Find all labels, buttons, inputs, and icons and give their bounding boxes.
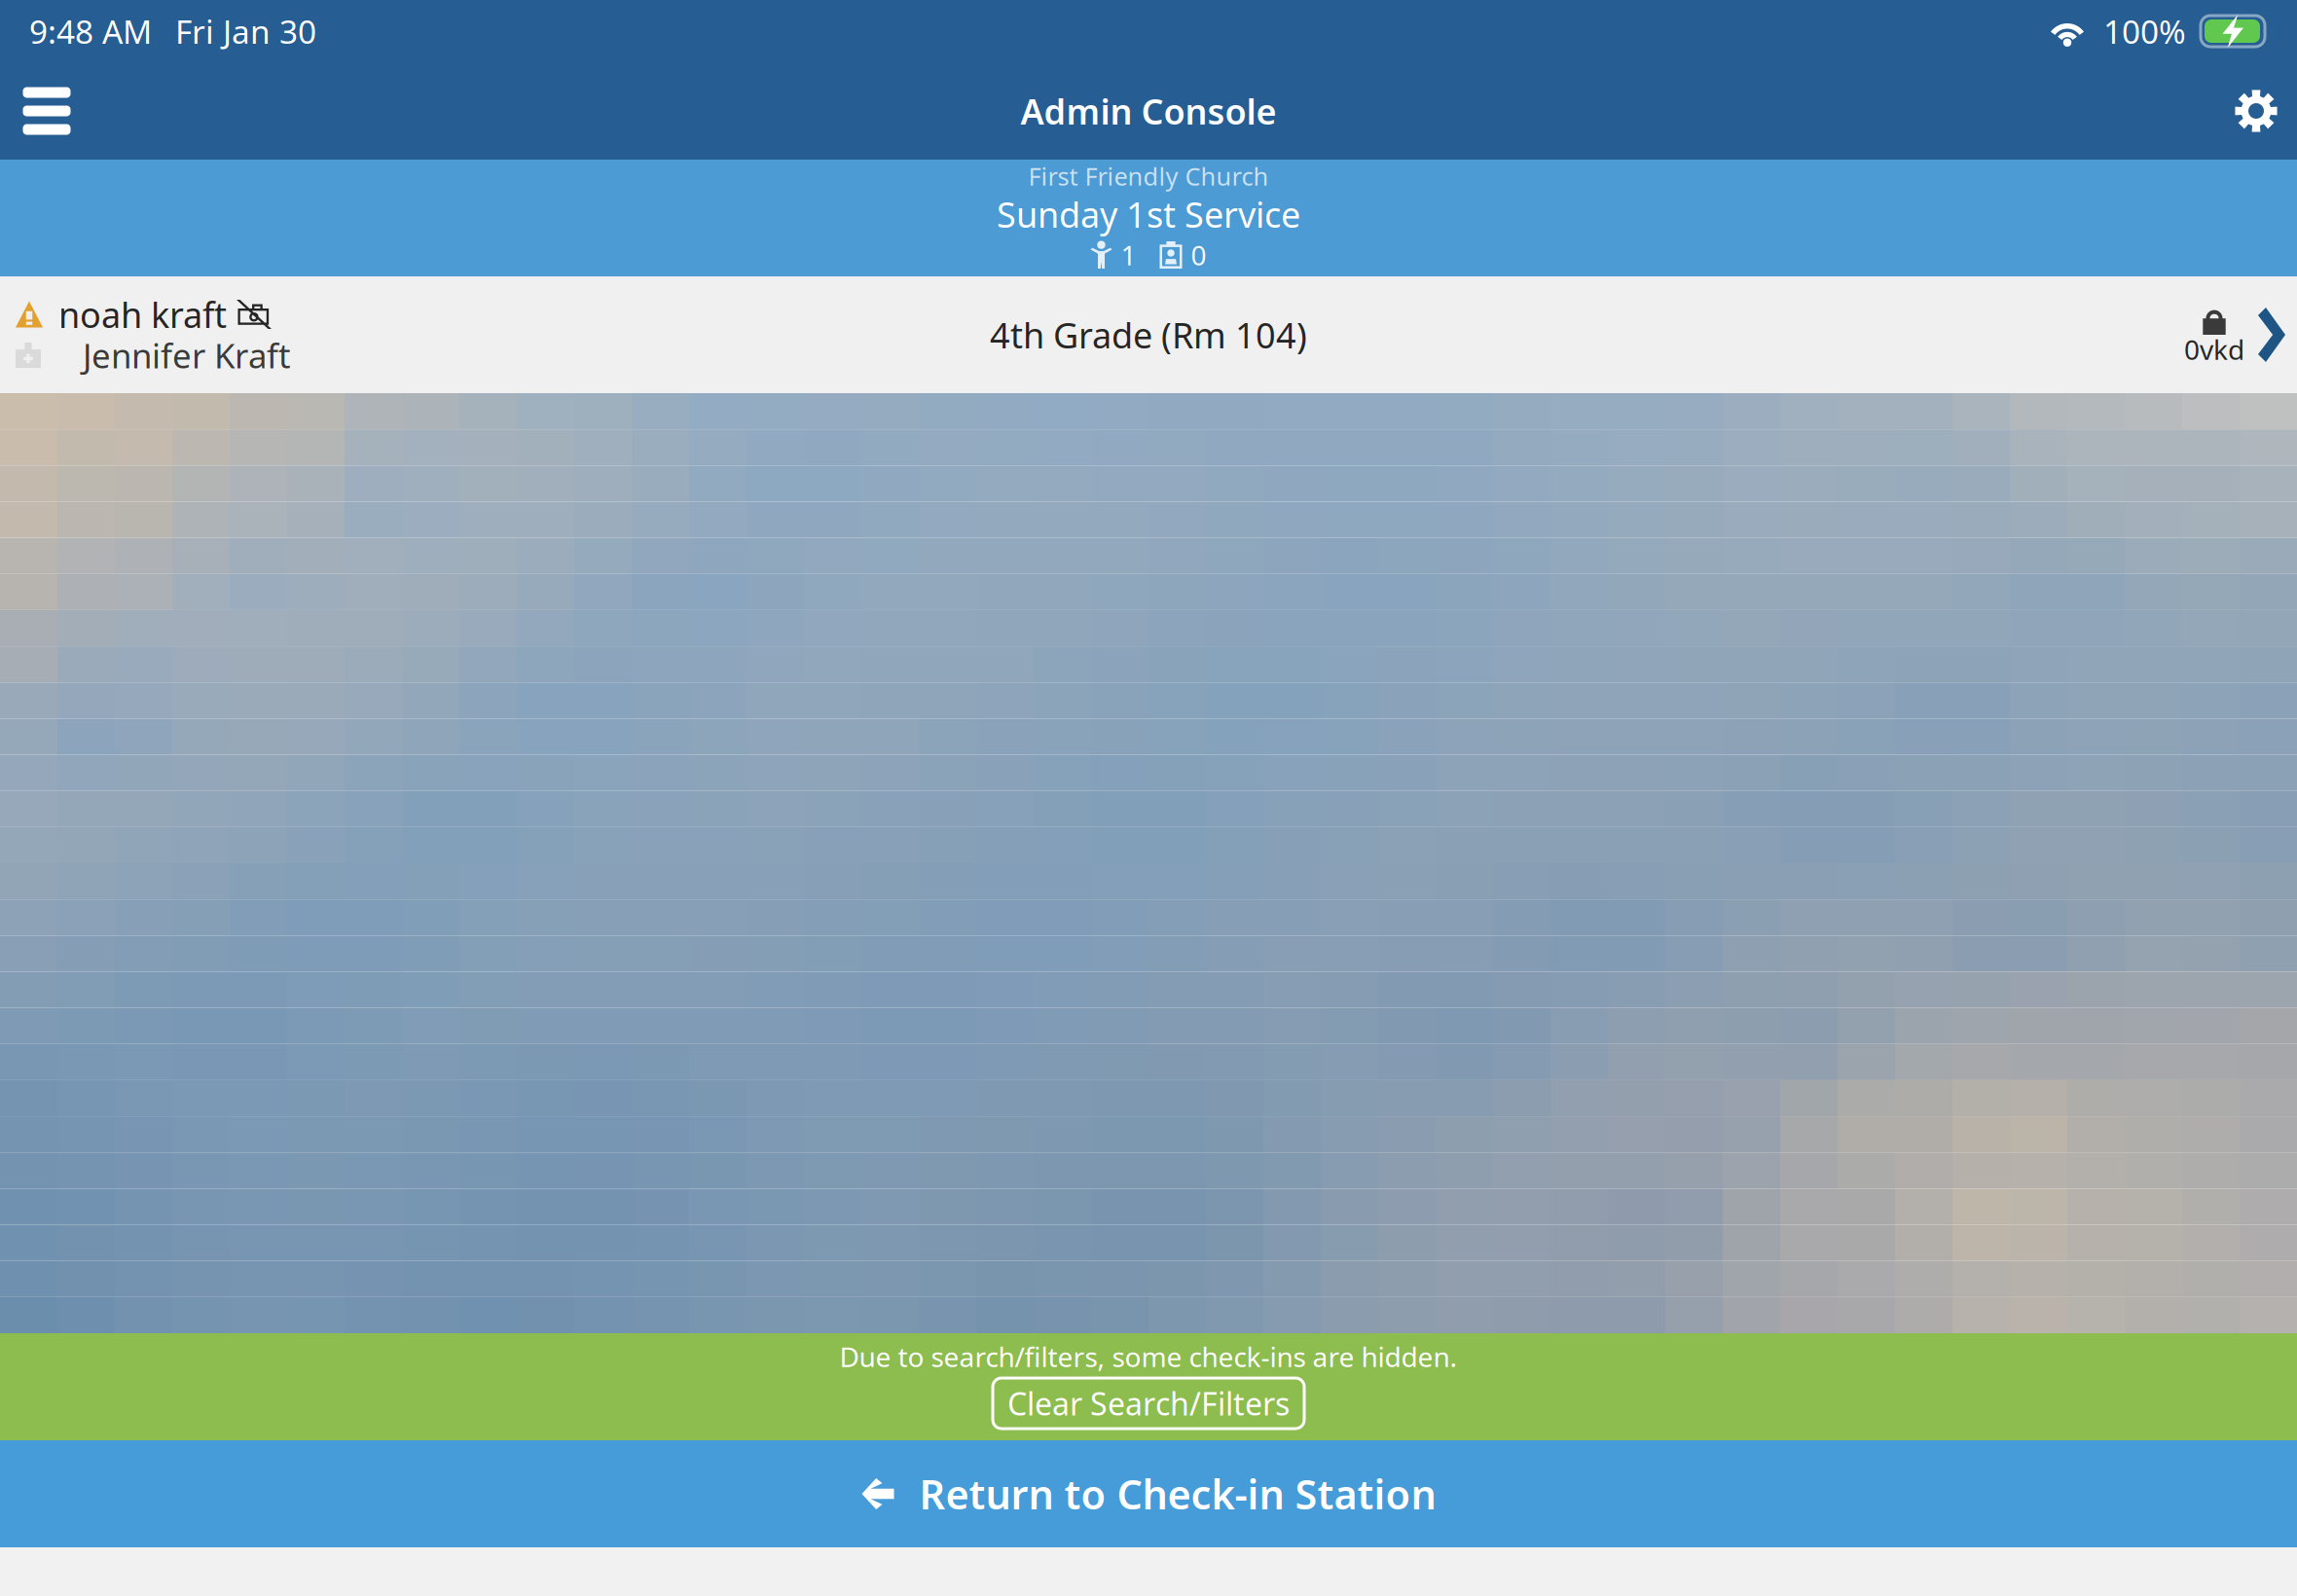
staticText: 4th Grade (Rm 104) (990, 312, 1307, 358)
staticText: noah kraft (58, 291, 227, 338)
staticText: Return to Check-in Station (919, 1467, 1436, 1521)
button[interactable]: Clear Search/Filters (954, 1376, 1343, 1431)
staticText: 0 (1191, 237, 1206, 273)
staticText: Jennifer Kraft (83, 333, 291, 378)
staticText: 1 (1121, 237, 1136, 273)
button[interactable]: noah kraft (0, 276, 2297, 393)
staticText: Admin Console (1021, 88, 1276, 134)
button[interactable]: Settings (2215, 62, 2297, 160)
staticText: 100% (2103, 10, 2186, 53)
staticText: Clear Search/Filters (1007, 1383, 1290, 1424)
button[interactable]: Return to Check-in Station (0, 1440, 2297, 1547)
staticText: Fri Jan 30 (175, 10, 316, 53)
staticText: Sunday 1st Service (997, 191, 1300, 237)
staticText: 0vkd (2184, 331, 2244, 367)
staticText: Due to search/filters, some check-ins ar… (839, 1338, 1458, 1375)
staticText: 9:48 AM (29, 10, 152, 53)
staticText: First Friendly Church (1028, 160, 1269, 192)
button[interactable]: Menu (0, 62, 93, 160)
